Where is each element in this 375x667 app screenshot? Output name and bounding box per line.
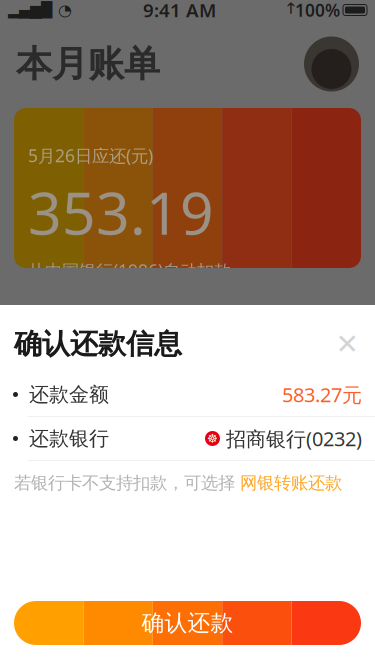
staticText: 从中国银行(1986)自动扣款 bbox=[28, 259, 231, 282]
staticText: 网银转账还款 bbox=[240, 472, 342, 494]
staticText: 确认还款 bbox=[141, 609, 233, 637]
staticText: ☸ bbox=[207, 432, 218, 445]
staticText: 招商银行(0232) bbox=[226, 425, 362, 452]
staticText: 确认还款信息 bbox=[14, 327, 182, 361]
staticText: 若银行卡不支持扣款，可选择 bbox=[14, 472, 240, 494]
staticText: 本月账单 bbox=[16, 42, 160, 86]
staticText: 🡑 bbox=[287, 0, 295, 22]
staticText: 9:41 AM bbox=[143, 0, 216, 22]
staticText: 583.27元 bbox=[282, 381, 362, 408]
button[interactable]: 确认还款 bbox=[14, 601, 361, 645]
staticText: ✕ bbox=[335, 328, 358, 360]
staticText: 还款金额 bbox=[29, 382, 109, 407]
button[interactable]: 网银转账还款 bbox=[240, 472, 342, 494]
staticText: ▂▄▆█ bbox=[8, 2, 52, 18]
button[interactable]: 关闭 bbox=[327, 324, 367, 364]
staticText: ◔ bbox=[52, 1, 72, 19]
staticText: 5月26日应还(元) bbox=[28, 144, 153, 167]
staticText: 100% bbox=[295, 0, 340, 21]
staticText: 353.19 bbox=[28, 173, 214, 251]
staticText: 还款银行 bbox=[29, 426, 109, 451]
